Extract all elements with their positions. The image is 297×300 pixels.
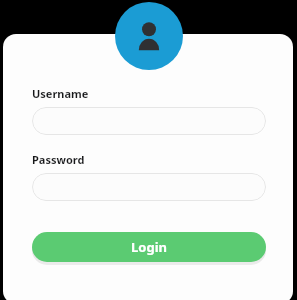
staticText: Password: [32, 152, 85, 167]
other: Profile avatar: [115, 2, 183, 70]
button[interactable]: Login: [32, 232, 266, 262]
staticText: Login: [131, 238, 167, 256]
staticText: Username: [32, 86, 89, 101]
button[interactable]: [32, 173, 266, 201]
button[interactable]: [32, 107, 266, 135]
